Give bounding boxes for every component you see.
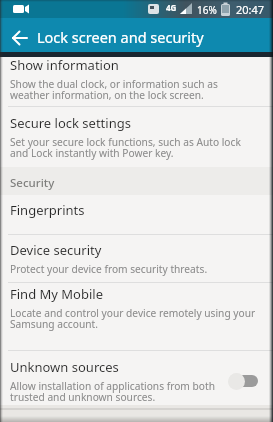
staticText: Show information: [10, 56, 119, 74]
staticText: Security: [10, 175, 55, 191]
staticText: 4G: [166, 2, 177, 13]
staticText: Protect your device from security threat…: [10, 262, 208, 276]
button[interactable]: Find My Mobile: [0, 284, 273, 347]
button[interactable]: Device security: [0, 240, 273, 280]
button[interactable]: [5, 23, 35, 53]
staticText: 20:47: [236, 2, 265, 17]
staticText: Fingerprints: [10, 201, 85, 219]
button[interactable]: Show information: [0, 55, 273, 105]
staticText: Show the dual clock, or information such…: [10, 77, 218, 102]
staticText: Set your secure lock functions, such as …: [10, 135, 241, 160]
button[interactable]: Secure lock settings: [0, 113, 273, 165]
button[interactable]: Fingerprints: [0, 200, 273, 233]
staticText: 16%: [197, 3, 217, 17]
staticText: Secure lock settings: [10, 114, 131, 132]
staticText: Find My Mobile: [10, 285, 104, 303]
staticText: Locate and control your device remotely …: [10, 306, 256, 331]
staticText: Unknown sources: [10, 358, 119, 376]
staticText: Device security: [10, 241, 102, 259]
button[interactable]: [228, 372, 260, 390]
staticText: Lock screen and security: [37, 27, 204, 47]
staticText: Allow installation of applications from …: [10, 379, 215, 404]
button[interactable]: Unknown sources: [0, 357, 273, 407]
